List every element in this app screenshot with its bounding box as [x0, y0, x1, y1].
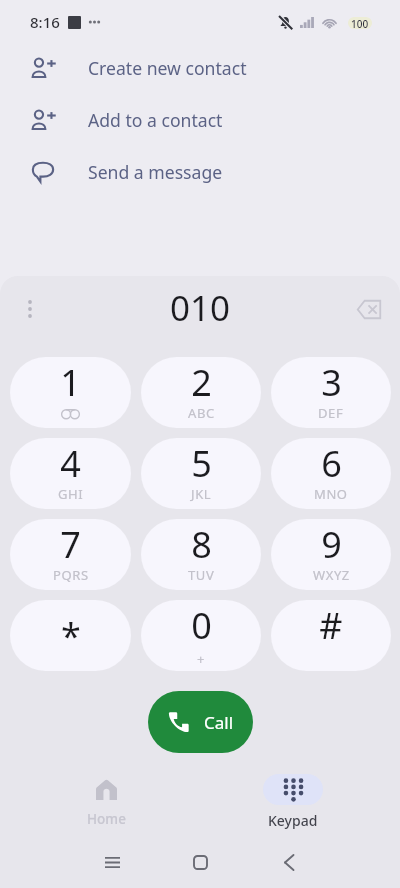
button[interactable]: Recents [90, 840, 134, 884]
staticText: # [319, 601, 343, 650]
staticText: 4 [60, 439, 81, 488]
staticText: PQRS [53, 566, 89, 584]
button[interactable]: Send a message [0, 148, 400, 200]
button[interactable]: 1 [10, 357, 131, 428]
button[interactable]: 4 [10, 438, 131, 509]
button[interactable]: Add to a contact [0, 96, 400, 148]
staticText: Call [204, 711, 234, 734]
staticText: 5 [191, 439, 212, 488]
button[interactable]: 8 [141, 519, 261, 590]
button[interactable]: 3 [271, 357, 391, 428]
staticText: 8:16 [30, 12, 60, 32]
button[interactable]: Keypad [243, 766, 343, 836]
staticText: Create new contact [88, 56, 247, 80]
button[interactable]: 9 [271, 519, 391, 590]
staticText: GHI [58, 485, 84, 503]
staticText: 1 [60, 358, 81, 407]
button[interactable]: 5 [141, 438, 261, 509]
staticText: DEF [318, 404, 344, 422]
staticText: MNO [314, 485, 348, 503]
staticText: 8 [191, 520, 212, 569]
button[interactable]: More options [12, 291, 48, 327]
staticText: ABC [188, 404, 215, 422]
staticText: 100 [351, 17, 369, 29]
button[interactable]: Home [178, 840, 222, 884]
staticText: JKL [191, 485, 212, 503]
staticText: 7 [60, 520, 81, 569]
staticText: 0 [191, 601, 212, 650]
staticText: 6 [321, 439, 342, 488]
button[interactable]: * [10, 600, 131, 671]
button[interactable]: Back [267, 840, 311, 884]
staticText: Keypad [268, 811, 318, 830]
button[interactable]: Backspace [349, 289, 389, 329]
staticText: 9 [321, 520, 342, 569]
button[interactable]: 7 [10, 519, 131, 590]
staticText: 3 [321, 358, 342, 407]
staticText: * [61, 611, 81, 660]
button[interactable]: 6 [271, 438, 391, 509]
button[interactable]: 0 [141, 600, 261, 671]
button[interactable]: 2 [141, 357, 261, 428]
staticText: WXYZ [313, 566, 350, 584]
staticText: Home [87, 810, 126, 828]
staticText: TUV [188, 566, 215, 584]
button[interactable]: Home [56, 766, 156, 836]
staticText: Send a message [88, 160, 223, 184]
staticText: 010 [170, 284, 231, 332]
staticText: + [197, 650, 206, 668]
staticText: Add to a contact [88, 108, 223, 132]
button[interactable]: Create new contact [0, 44, 400, 96]
button[interactable]: Call [148, 691, 253, 753]
button[interactable]: # [271, 600, 391, 671]
staticText: 2 [191, 358, 212, 407]
